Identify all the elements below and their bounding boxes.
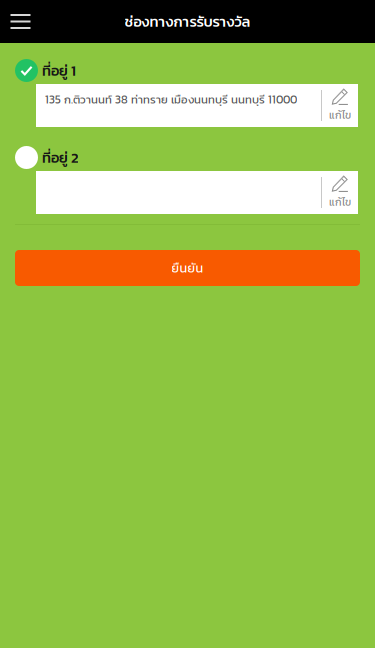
- button[interactable]: Menu: [0, 0, 41, 43]
- button[interactable]: แก้ไข: [321, 84, 358, 127]
- staticText: แก้ไข: [329, 194, 351, 210]
- staticText: ยืนยัน: [171, 258, 203, 277]
- staticText: ช่องทางการรับรางวัล: [124, 10, 250, 32]
- button[interactable]: ยืนยัน: [15, 250, 360, 286]
- staticText: ที่อยู่ 2: [42, 146, 79, 168]
- staticText: 135 ก.ติวานนท์ 38 ท่าทราย เมืองนนทบุรี น…: [45, 91, 297, 108]
- button[interactable]: ที่อยู่ 2: [0, 146, 375, 169]
- staticText: ที่อยู่ 1: [42, 59, 76, 81]
- button[interactable]: แก้ไข: [321, 171, 358, 214]
- button[interactable]: ที่อยู่ 1: [0, 59, 375, 82]
- staticText: แก้ไข: [329, 107, 351, 123]
